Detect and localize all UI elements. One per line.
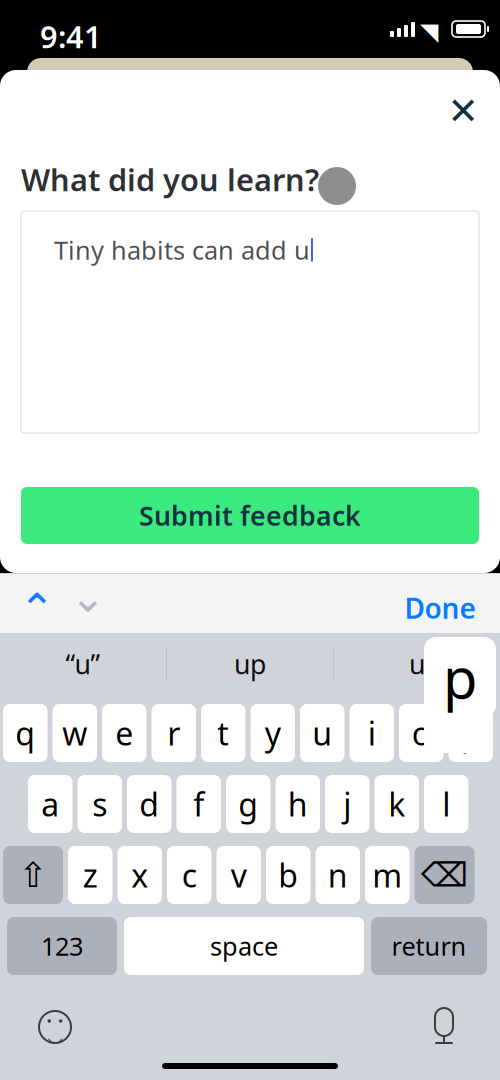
staticText: h	[288, 783, 308, 825]
staticText: Submit feedback	[139, 498, 361, 533]
button[interactable]: Shift	[3, 846, 63, 904]
staticText: k	[388, 783, 405, 825]
button[interactable]: z	[68, 846, 112, 904]
staticText: e	[115, 712, 133, 754]
button[interactable]: Close	[435, 83, 491, 139]
staticText: u	[312, 712, 332, 754]
staticText: ◥	[420, 18, 438, 45]
staticText: ‿	[47, 1011, 62, 1045]
button[interactable]: space	[124, 917, 364, 975]
staticText: d	[139, 783, 159, 825]
staticText: n	[328, 854, 348, 896]
staticText: Tiny habits can add u	[54, 233, 310, 267]
staticText: y	[265, 712, 281, 754]
button[interactable]: d	[127, 775, 171, 833]
staticText: What did you learn?	[21, 159, 319, 200]
button[interactable]: return	[371, 917, 487, 975]
staticText: ⌄	[70, 573, 106, 621]
button[interactable]: k	[374, 775, 419, 833]
staticText: up	[234, 646, 266, 682]
button[interactable]: l	[424, 775, 468, 833]
button[interactable]: i	[349, 704, 394, 762]
button[interactable]: j	[325, 775, 369, 833]
button[interactable]: o	[399, 704, 443, 762]
staticText: l	[442, 783, 450, 825]
button[interactable]: p	[448, 704, 493, 762]
staticText: return	[391, 929, 466, 963]
button[interactable]: r	[151, 704, 196, 762]
staticText: f	[193, 783, 204, 825]
button[interactable]: g	[226, 775, 270, 833]
button[interactable]: Emoji keyboard	[29, 1001, 81, 1053]
button[interactable]: Delete	[414, 846, 474, 904]
staticText: “u”	[65, 646, 100, 682]
button[interactable]: Submit feedback	[21, 487, 479, 544]
staticText: ⇧	[18, 855, 47, 895]
button[interactable]: x	[117, 846, 162, 904]
staticText: 9:41	[40, 16, 102, 57]
button[interactable]: y	[250, 704, 295, 762]
button[interactable]: Previous field	[11, 585, 63, 633]
staticText: u	[409, 646, 425, 682]
staticText: g	[238, 783, 258, 825]
staticText: a	[41, 783, 59, 825]
staticText: ✕	[447, 90, 478, 132]
button[interactable]: m	[365, 846, 409, 904]
staticText: space	[210, 929, 278, 963]
button[interactable]: “u”	[0, 633, 166, 695]
button[interactable]: v	[216, 846, 261, 904]
button[interactable]: 123	[7, 917, 117, 975]
button[interactable]: b	[266, 846, 310, 904]
staticText: s	[92, 783, 107, 825]
button[interactable]: s	[77, 775, 122, 833]
staticText: ⌃	[19, 585, 55, 633]
button[interactable]: t	[201, 704, 245, 762]
button[interactable]: Done	[398, 584, 482, 632]
staticText: t	[217, 712, 229, 754]
staticText: ⌫	[421, 856, 468, 894]
staticText: v	[231, 854, 247, 896]
button[interactable]: up	[167, 633, 333, 695]
button[interactable]: c	[167, 846, 211, 904]
button[interactable]: f	[176, 775, 221, 833]
button[interactable]: Dictation	[418, 1001, 470, 1053]
staticText: j	[343, 783, 351, 825]
button[interactable]: u	[300, 704, 344, 762]
staticText: c	[182, 854, 197, 896]
button[interactable]: a	[28, 775, 72, 833]
staticText: 123	[41, 929, 83, 963]
button[interactable]: e	[102, 704, 146, 762]
button[interactable]: q	[3, 704, 47, 762]
staticText: b	[278, 854, 298, 896]
staticText: i	[368, 712, 376, 754]
button[interactable]: Next field	[62, 573, 114, 621]
staticText: o	[412, 712, 431, 754]
staticText: Done	[404, 589, 475, 627]
staticText: q	[15, 712, 35, 754]
staticText: p	[443, 640, 477, 714]
staticText: w	[62, 712, 87, 754]
staticText: m	[372, 854, 402, 896]
button[interactable]: n	[315, 846, 360, 904]
staticText: z	[83, 854, 98, 896]
staticText: r	[167, 712, 180, 754]
button[interactable]: h	[275, 775, 320, 833]
button[interactable]: w	[52, 704, 97, 762]
staticText: p	[461, 712, 481, 754]
button[interactable]: u	[334, 633, 500, 695]
staticText: x	[131, 854, 148, 896]
